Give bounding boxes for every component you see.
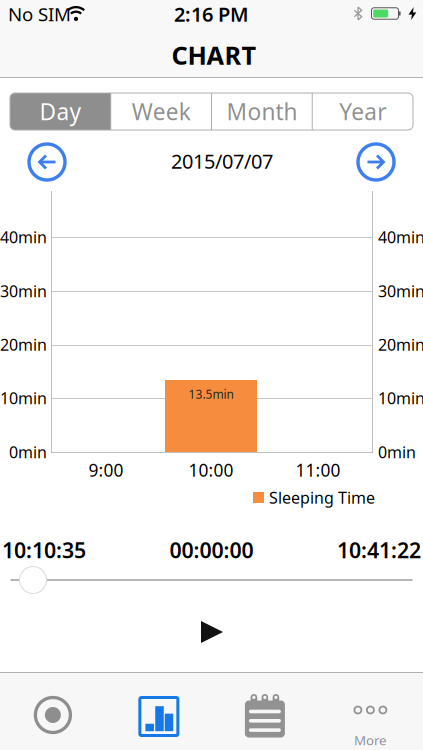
button[interactable]: Chart: [106, 672, 211, 750]
staticText: 40min: [378, 226, 423, 248]
staticText: 10:10:35: [2, 536, 86, 564]
button[interactable]: Year: [312, 93, 413, 130]
staticText: Week: [132, 96, 191, 126]
staticText: 00:00:00: [169, 536, 253, 564]
staticText: More: [354, 731, 387, 749]
button[interactable]: Previous day: [29, 144, 65, 180]
staticText: 2015/07/07: [171, 148, 273, 174]
staticText: 10min: [378, 387, 423, 409]
staticText: CHART: [171, 38, 256, 72]
staticText: 10min: [0, 387, 47, 409]
button[interactable]: Day: [10, 93, 111, 130]
staticText: 0min: [9, 441, 47, 463]
staticText: No SIM: [8, 2, 71, 26]
staticText: 10:41:22: [337, 536, 421, 564]
button[interactable]: Week: [111, 93, 212, 130]
staticText: 13.5min: [188, 386, 233, 402]
staticText: 2:16 PM: [174, 1, 249, 27]
staticText: 20min: [0, 334, 47, 355]
button[interactable]: More: [318, 672, 423, 750]
staticText: 0min: [378, 441, 416, 463]
staticText: 40min: [0, 226, 47, 248]
button[interactable]: Play: [201, 621, 223, 643]
staticText: Year: [339, 96, 386, 126]
staticText: 30min: [378, 280, 423, 302]
staticText: Sleeping Time: [269, 487, 375, 508]
staticText: 9:00: [88, 458, 123, 481]
staticText: 11:00: [295, 458, 340, 481]
button[interactable]: Next day: [358, 144, 394, 180]
button[interactable]: Log: [212, 672, 317, 750]
staticText: 10:00: [188, 458, 233, 481]
staticText: 30min: [0, 280, 47, 302]
staticText: Month: [226, 96, 297, 126]
button[interactable]: Month: [211, 93, 312, 130]
button[interactable]: Playback position: [19, 566, 46, 593]
staticText: Day: [39, 96, 81, 126]
staticText: 20min: [378, 334, 423, 355]
button[interactable]: Record: [0, 672, 105, 750]
